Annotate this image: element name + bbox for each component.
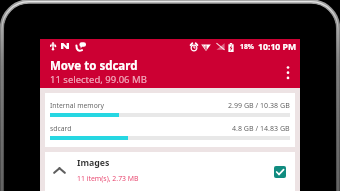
staticText: 18% (240, 42, 254, 51)
button[interactable]: Select Images (264, 152, 295, 191)
staticText: 10:10 PM (258, 41, 297, 53)
staticText: 11 selected, 99.06 MB (50, 73, 147, 86)
staticText: 11 item(s), 2.73 MB (77, 174, 139, 183)
button[interactable]: More options (276, 59, 300, 83)
staticText: Images (77, 157, 110, 169)
staticText: Internal memory (50, 101, 105, 110)
button[interactable]: Images (45, 152, 295, 191)
staticText: 4.8 GB / 14.83 GB (232, 123, 290, 133)
staticText: Move to sdcard (50, 58, 138, 74)
staticText: sdcard (50, 124, 72, 133)
staticText: 2.99 GB / 10.38 GB (228, 100, 290, 110)
